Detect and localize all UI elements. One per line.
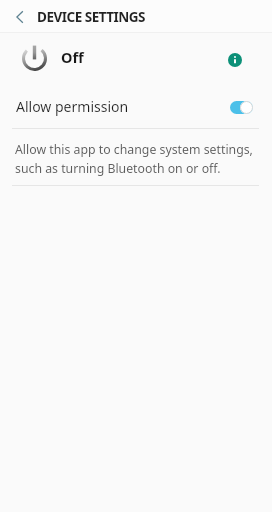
staticText: Allow permission: [16, 97, 129, 116]
button[interactable]: Off: [0, 33, 272, 85]
staticText: Off: [61, 47, 84, 67]
staticText: DEVICE SETTINGS: [37, 8, 145, 26]
staticText: Allow this app to change system settings…: [15, 141, 260, 176]
button[interactable]: Allow permission: [0, 85, 272, 128]
button[interactable]: Allow permission: [230, 95, 253, 119]
button[interactable]: Back: [0, 0, 37, 32]
button[interactable]: Information: [218, 43, 252, 77]
